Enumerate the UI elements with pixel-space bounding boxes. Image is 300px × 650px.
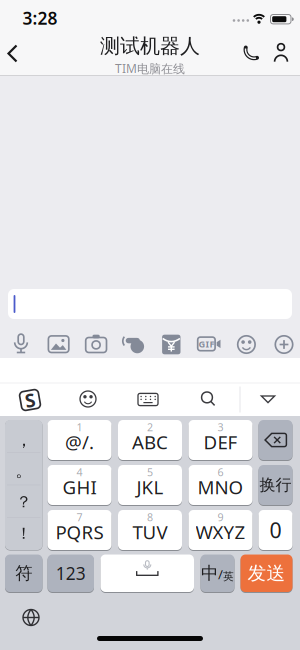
staticText: GHI bbox=[62, 475, 96, 499]
staticText: WXYZ bbox=[195, 520, 245, 544]
button[interactable]: ？ bbox=[5, 486, 42, 518]
staticText: ， bbox=[15, 429, 32, 451]
button[interactable]: GIF bbox=[196, 331, 222, 357]
button[interactable]: Poke bbox=[121, 331, 147, 357]
button[interactable]: 1 bbox=[47, 420, 111, 460]
staticText: TUV bbox=[132, 520, 167, 544]
staticText: 英 bbox=[223, 570, 234, 583]
staticText: 3 bbox=[217, 420, 223, 434]
button[interactable]: 8 bbox=[118, 510, 182, 550]
staticText: TIM电脑在线 bbox=[115, 60, 185, 76]
button[interactable]: 。 bbox=[5, 454, 42, 487]
button[interactable]: Search bbox=[196, 387, 220, 411]
button[interactable]: Voice message bbox=[8, 331, 34, 357]
staticText: 4 bbox=[76, 465, 82, 479]
button[interactable]: More bbox=[271, 331, 297, 357]
button[interactable]: Red packet bbox=[158, 331, 184, 357]
button[interactable]: ！ bbox=[5, 517, 42, 550]
staticText: 6 bbox=[217, 465, 223, 479]
staticText: 。 bbox=[15, 460, 32, 481]
button[interactable]: 5 bbox=[118, 465, 182, 505]
staticText: S bbox=[25, 388, 35, 412]
button[interactable]: Camera bbox=[83, 331, 109, 357]
button[interactable]: 9 bbox=[188, 510, 252, 550]
button[interactable]: 123 bbox=[47, 554, 94, 592]
button[interactable]: 6 bbox=[188, 465, 252, 505]
staticText: JKL bbox=[136, 475, 163, 499]
staticText: 3:28 bbox=[22, 6, 57, 29]
button[interactable]: Voice call bbox=[239, 40, 265, 66]
staticText: 8 bbox=[147, 510, 153, 524]
button[interactable]: Next keyboard bbox=[20, 606, 42, 628]
button[interactable]: Emoji keyboard bbox=[76, 387, 100, 411]
button[interactable]: Emoji bbox=[233, 331, 259, 357]
button[interactable]: 发送 bbox=[240, 554, 292, 592]
button[interactable]: 4 bbox=[47, 465, 111, 505]
staticText: 换行 bbox=[259, 475, 291, 495]
staticText: 9 bbox=[217, 510, 223, 524]
staticText: DEF bbox=[203, 430, 237, 454]
staticText: / bbox=[218, 565, 223, 583]
button[interactable]: 3 bbox=[188, 420, 252, 460]
staticText: 123 bbox=[56, 562, 86, 585]
staticText: GIF bbox=[198, 338, 214, 350]
button[interactable]: Space bbox=[100, 554, 194, 592]
button[interactable]: Delete bbox=[258, 420, 292, 460]
staticText: 5 bbox=[147, 465, 153, 479]
staticText: 0 bbox=[269, 516, 281, 544]
button[interactable]: ， bbox=[5, 424, 42, 456]
button[interactable]: Sogou bbox=[17, 387, 43, 413]
button[interactable]: Message input bbox=[8, 289, 292, 319]
staticText: 7 bbox=[76, 510, 82, 524]
button[interactable]: Photos bbox=[46, 331, 72, 357]
button[interactable]: Profile bbox=[269, 40, 293, 66]
button[interactable]: 换行 bbox=[258, 465, 292, 505]
staticText: 2 bbox=[147, 420, 153, 434]
staticText: 符 bbox=[15, 563, 32, 584]
button[interactable]: 7 bbox=[47, 510, 111, 550]
staticText: ABC bbox=[132, 430, 168, 454]
staticText: MNO bbox=[197, 475, 243, 499]
button[interactable]: 2 bbox=[118, 420, 182, 460]
staticText: 1 bbox=[76, 420, 82, 434]
staticText: PQRS bbox=[55, 520, 103, 544]
button[interactable]: Back bbox=[2, 41, 24, 65]
staticText: 发送 bbox=[247, 562, 285, 585]
button[interactable]: Keyboard layout bbox=[135, 387, 161, 411]
staticText: 测试机器人 bbox=[100, 34, 200, 58]
button[interactable]: 0 bbox=[258, 510, 292, 550]
button[interactable]: Hide keyboard bbox=[256, 387, 280, 411]
staticText: 中 bbox=[201, 563, 218, 584]
staticText: ！ bbox=[16, 524, 32, 543]
button[interactable]: 符 bbox=[5, 554, 42, 592]
staticText: @/. bbox=[65, 430, 94, 454]
staticText: ？ bbox=[16, 492, 32, 512]
button[interactable]: 中 bbox=[200, 554, 234, 592]
